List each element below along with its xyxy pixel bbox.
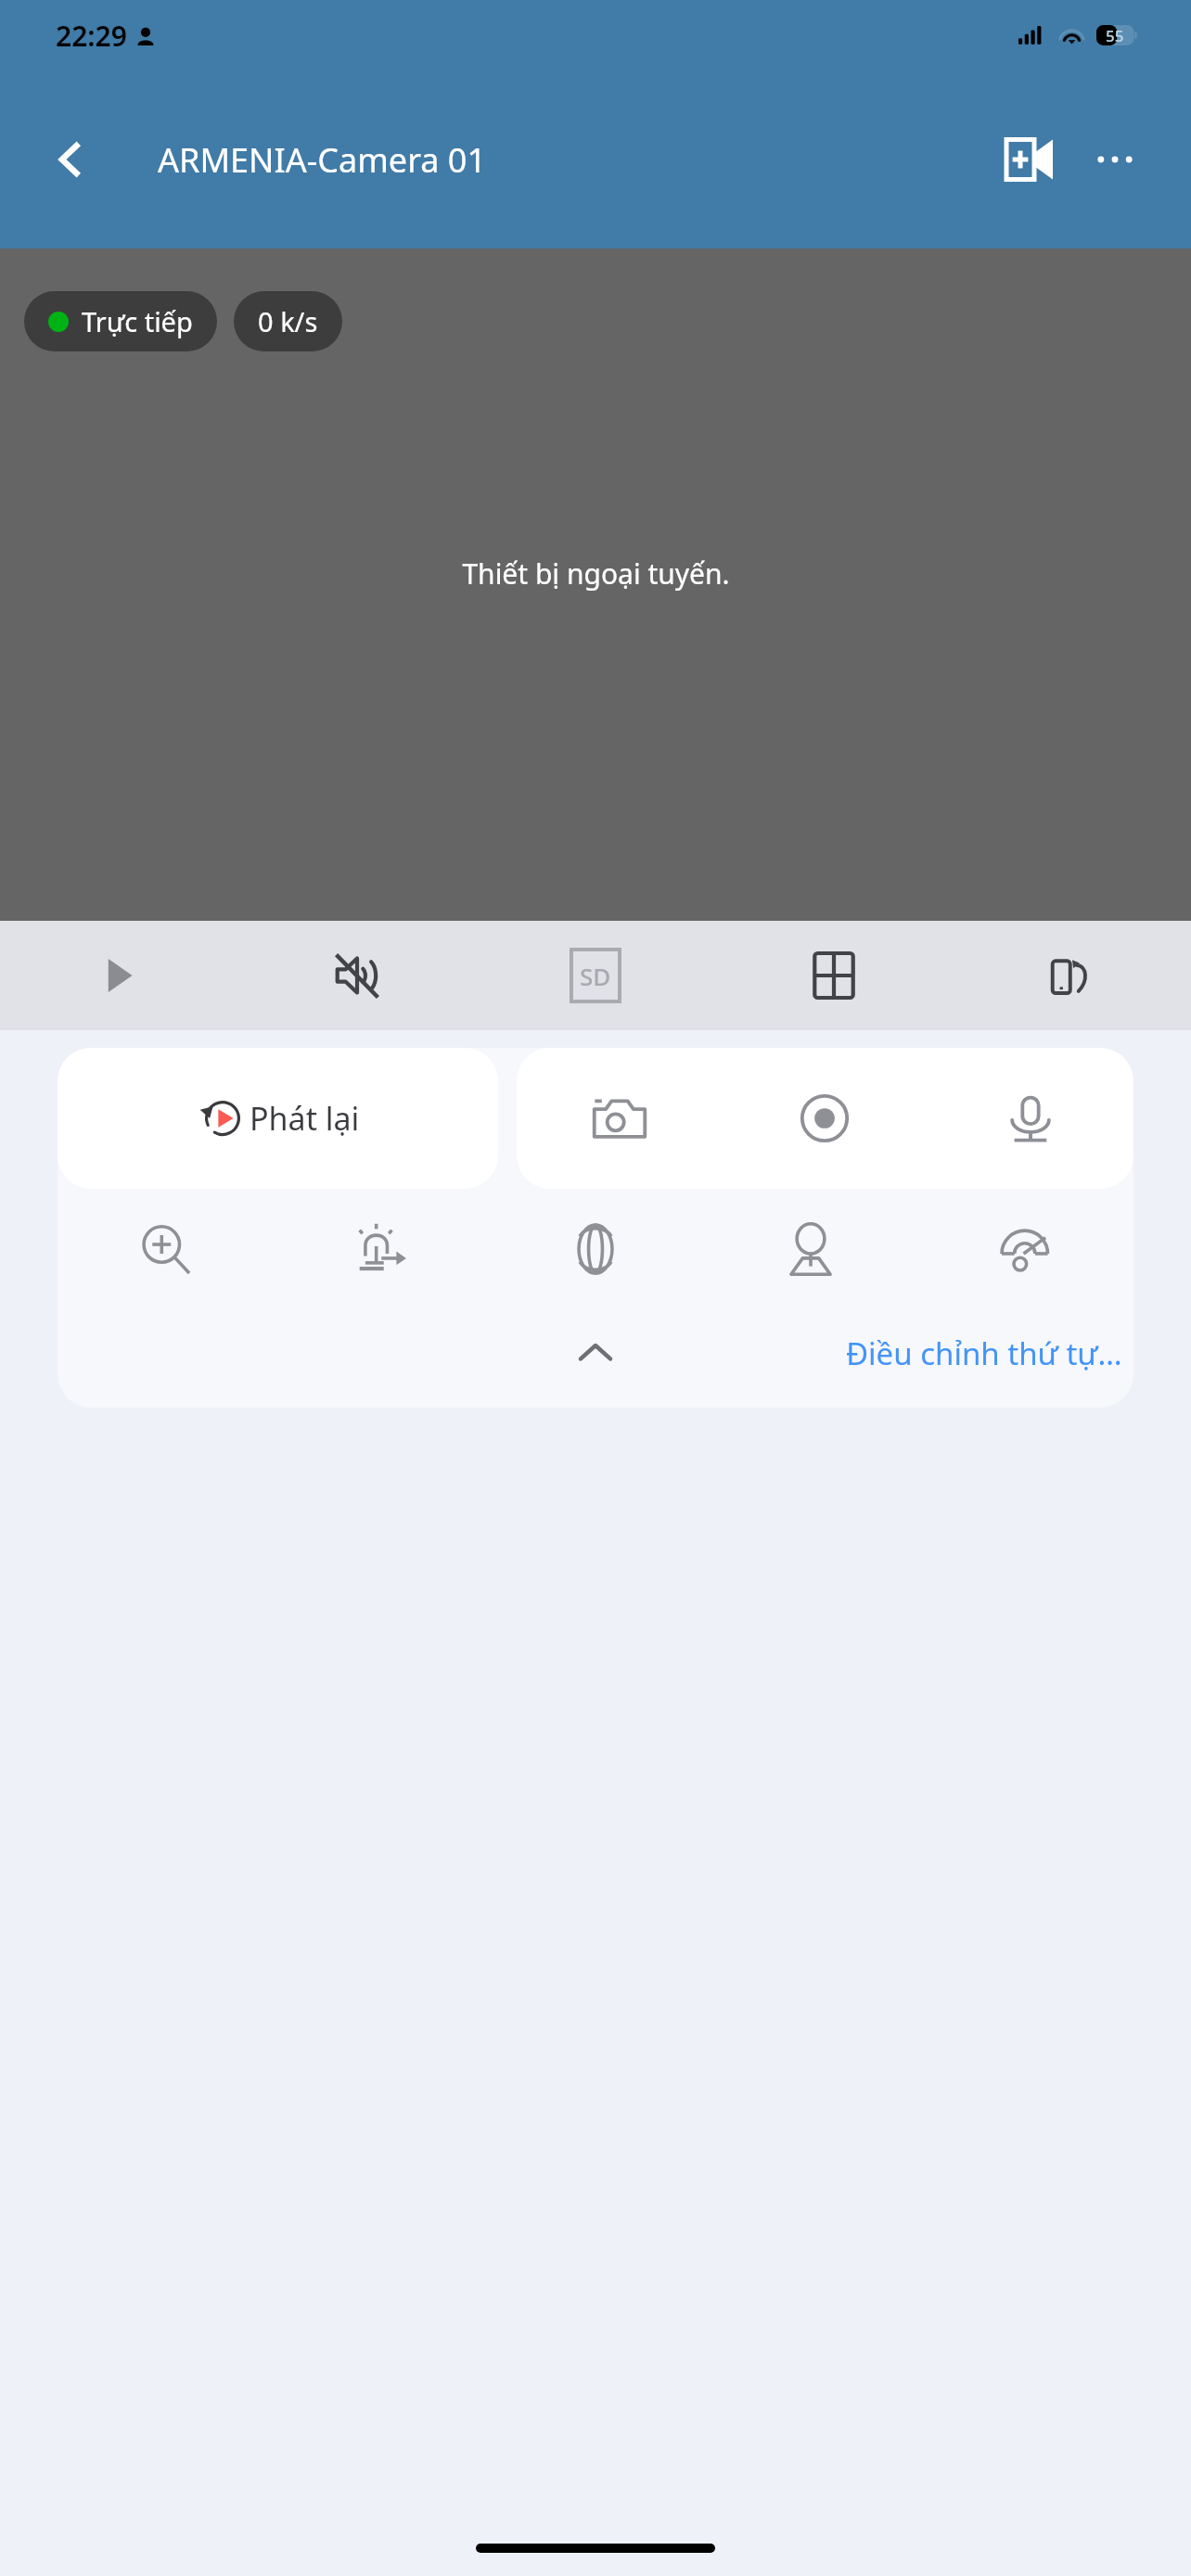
button[interactable]: More options xyxy=(1080,124,1150,195)
button[interactable]: Record xyxy=(722,1048,928,1189)
staticText: 55 xyxy=(1106,25,1124,45)
button[interactable]: 0 k/s xyxy=(234,291,342,351)
button[interactable]: Play xyxy=(0,921,237,1030)
button[interactable]: Phát lại xyxy=(58,1048,498,1189)
button[interactable]: Digital zoom xyxy=(58,1189,273,1309)
button[interactable]: Điều chỉnh thứ tự… xyxy=(835,1323,1133,1384)
button[interactable]: Snapshot xyxy=(517,1048,722,1189)
button[interactable]: Collapse xyxy=(563,1320,628,1385)
staticText: 0 k/s xyxy=(258,303,318,339)
staticText: ARMENIA-Camera 01 xyxy=(158,137,487,183)
staticText: Thiết bị ngoại tuyến. xyxy=(462,555,730,593)
button[interactable]: Quality SD xyxy=(476,921,714,1030)
staticText: Điều chỉnh thứ tự… xyxy=(846,1333,1122,1374)
staticText: 22:29 xyxy=(56,17,127,55)
button[interactable]: Defog xyxy=(918,1189,1133,1309)
button[interactable]: Trực tiếp xyxy=(24,291,217,351)
button[interactable]: Alarm output xyxy=(273,1189,488,1309)
button[interactable]: Back xyxy=(39,129,100,190)
staticText: Phát lại xyxy=(250,1097,360,1140)
staticText: SD xyxy=(580,960,611,992)
button[interactable]: Sphere view xyxy=(488,1189,703,1309)
button[interactable]: Rotate screen xyxy=(953,921,1191,1030)
staticText: Trực tiếp xyxy=(82,303,193,339)
button[interactable]: Add camera xyxy=(994,124,1065,195)
button[interactable]: Mute xyxy=(237,921,476,1030)
button[interactable]: PTZ control xyxy=(703,1189,918,1309)
button[interactable]: Talk xyxy=(928,1048,1133,1189)
button[interactable]: Split view xyxy=(714,921,953,1030)
